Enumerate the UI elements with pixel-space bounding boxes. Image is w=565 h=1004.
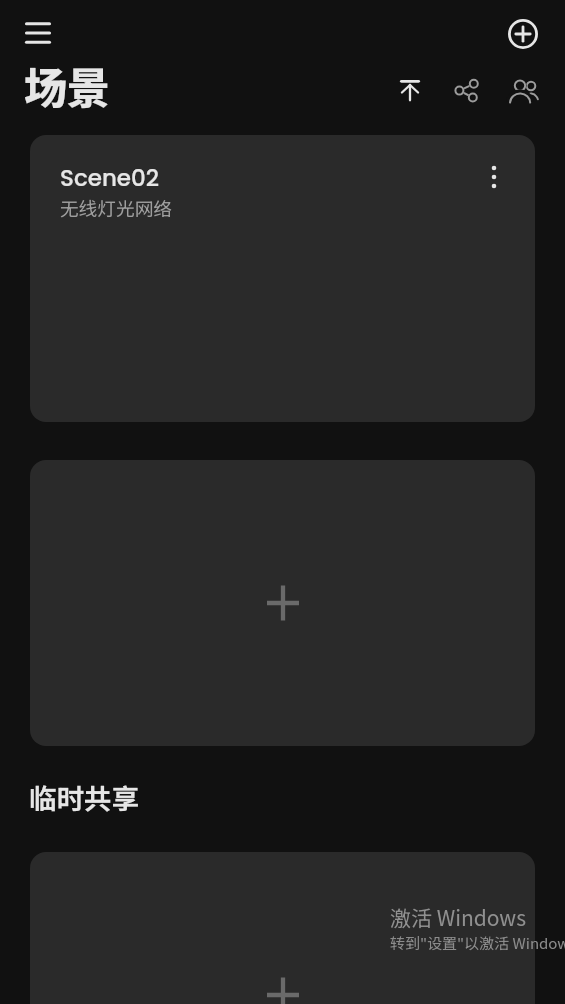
- button[interactable]: Share: [442, 68, 490, 116]
- staticText: 无线灯光网络: [60, 194, 173, 221]
- staticText: 转到"设置"以激活 Windows。: [390, 932, 565, 954]
- button[interactable]: Scene02: [30, 135, 535, 422]
- button[interactable]: Add scene: [499, 10, 547, 58]
- button[interactable]: Add scene: [30, 852, 535, 1004]
- staticText: Scene02: [60, 162, 160, 194]
- button[interactable]: More options: [473, 156, 515, 198]
- staticText: 场景: [24, 54, 110, 116]
- staticText: 激活 Windows: [390, 902, 526, 932]
- button[interactable]: Upload: [386, 68, 434, 116]
- staticText: 临时共享: [29, 777, 139, 817]
- button[interactable]: Members: [500, 68, 548, 116]
- button[interactable]: Menu: [14, 9, 62, 57]
